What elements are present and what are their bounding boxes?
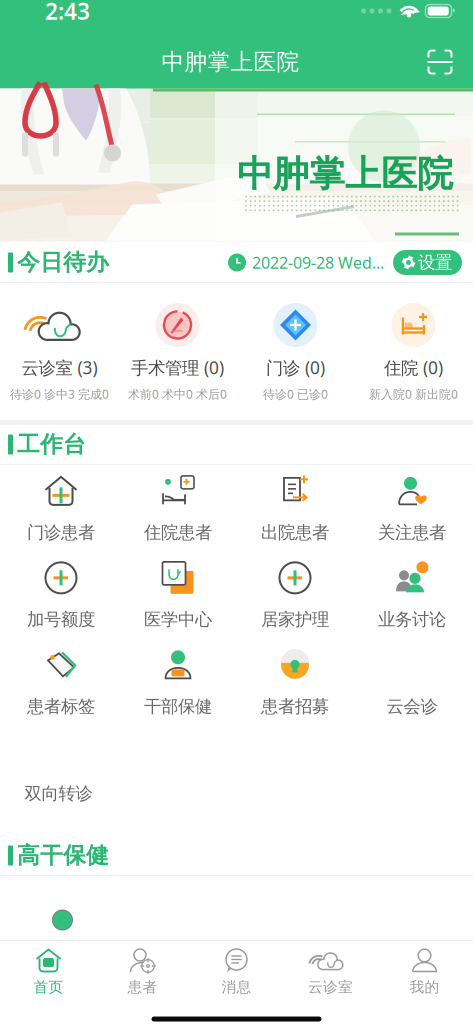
staticText: 工作台 — [17, 431, 86, 458]
staticText: 双向转诊 — [24, 783, 92, 804]
staticText: 消息 — [221, 978, 251, 996]
staticText: 患者标签 — [27, 696, 95, 717]
staticText: 云诊室 (3) — [21, 356, 97, 379]
staticText: 门诊 (0) — [266, 356, 325, 379]
button[interactable]: 扫一扫 — [419, 41, 461, 83]
staticText: 住院 (0) — [384, 356, 443, 379]
staticText: 干部保健 — [144, 696, 212, 717]
button[interactable]: 患者 — [95, 941, 189, 1002]
button[interactable]: 门诊患者 — [2, 465, 119, 552]
button[interactable]: 双向转诊 — [0, 726, 117, 813]
button[interactable]: 住院 (0) — [354, 283, 472, 420]
staticText: 手术管理 (0) — [131, 356, 224, 379]
staticText: 待诊0 诊中3 完成0 — [10, 386, 109, 402]
staticText: 今日待办 — [17, 249, 109, 276]
staticText: 2:43 — [45, 0, 90, 26]
staticText: 患者招募 — [261, 696, 329, 717]
button[interactable]: 居家护理 — [236, 552, 353, 639]
button[interactable]: 业务讨论 — [353, 552, 470, 639]
staticText: 患者 — [127, 978, 157, 996]
staticText: 出院患者 — [261, 522, 329, 543]
button[interactable]: 患者标签 — [2, 639, 119, 726]
staticText: 关注患者 — [378, 522, 446, 543]
staticText: 高干保健 — [17, 842, 109, 869]
staticText: 我的 — [409, 978, 439, 996]
button[interactable]: 首页 — [1, 941, 95, 1002]
button[interactable]: 云会诊 — [353, 639, 470, 726]
button[interactable]: 住院患者 — [119, 465, 236, 552]
staticText: 术前0 术中0 术后0 — [128, 386, 227, 402]
button[interactable]: 云诊室 — [283, 941, 377, 1002]
button[interactable]: 消息 — [189, 941, 283, 1002]
staticText: 医学中心 — [144, 609, 212, 630]
staticText: 2022-09-28 Wed... — [252, 252, 384, 273]
staticText: 业务讨论 — [378, 609, 446, 630]
staticText: 中肿掌上医院 — [161, 48, 299, 76]
staticText: 云诊室 — [308, 978, 353, 996]
staticText: 首页 — [33, 978, 63, 996]
staticText: 住院患者 — [144, 522, 212, 543]
button[interactable]: 患者招募 — [236, 639, 353, 726]
button[interactable]: 加号额度 — [2, 552, 119, 639]
staticText: 门诊患者 — [27, 522, 95, 543]
button[interactable]: 关注患者 — [353, 465, 470, 552]
staticText: 中肿掌上医院 — [237, 152, 453, 196]
button[interactable]: 干部保健 — [119, 639, 236, 726]
staticText: 设置 — [418, 252, 452, 273]
staticText: 居家护理 — [261, 609, 329, 630]
button[interactable]: 我的 — [377, 941, 471, 1002]
button[interactable]: 手术管理 (0) — [118, 283, 236, 420]
button[interactable]: 门诊 (0) — [236, 283, 354, 420]
button[interactable]: 出院患者 — [236, 465, 353, 552]
button[interactable]: 云诊室 (3) — [0, 283, 118, 420]
staticText: 云会诊 — [386, 696, 437, 717]
staticText: 待诊0 已诊0 — [263, 386, 328, 402]
staticText: 加号额度 — [27, 609, 95, 630]
staticText: 新入院0 新出院0 — [369, 386, 458, 402]
button[interactable]: 医学中心 — [119, 552, 236, 639]
button[interactable]: 设置 — [393, 250, 462, 275]
